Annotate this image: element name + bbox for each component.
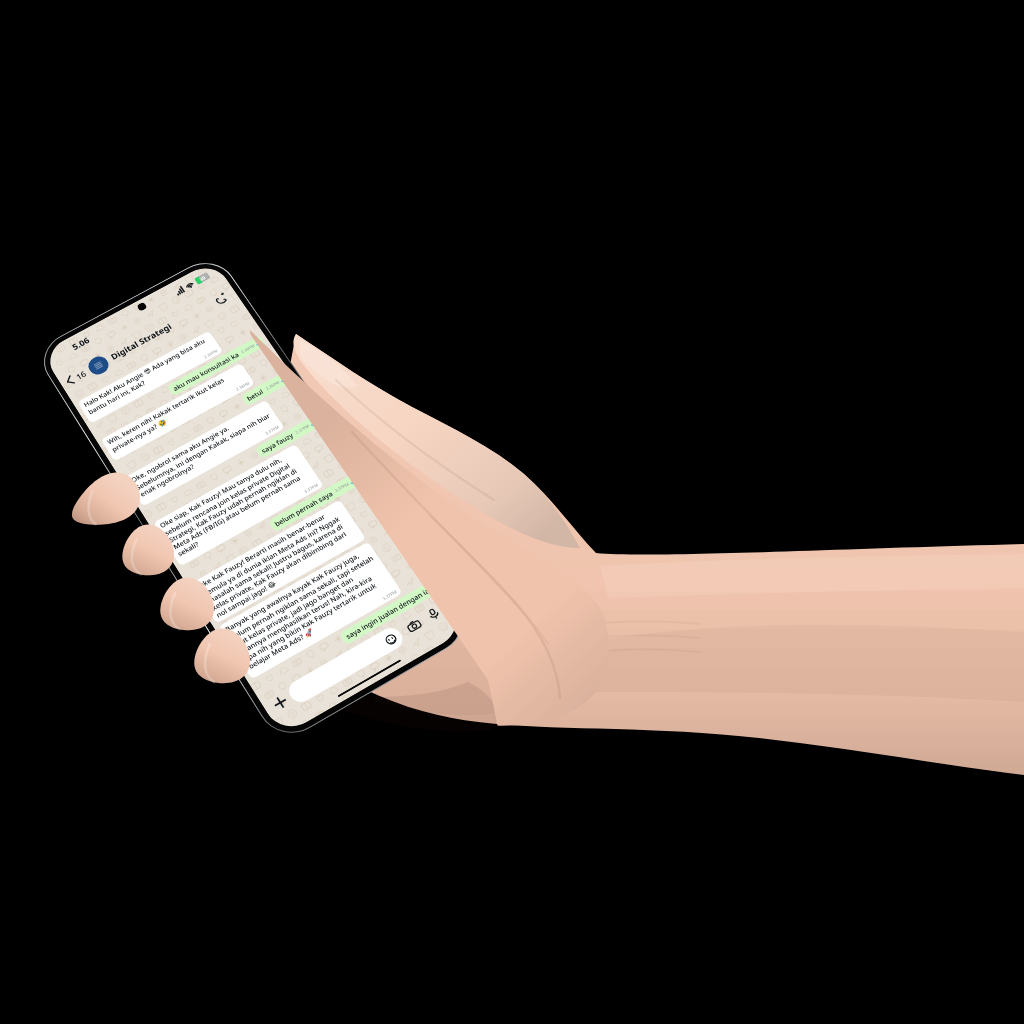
staticText: 2.38PM <box>235 381 251 392</box>
staticText: belum pernah saya <box>273 489 335 528</box>
button[interactable]: saya ingin jualan dengan ia <box>339 582 437 645</box>
button[interactable]: Attach <box>265 689 294 716</box>
staticText: saya fauzy <box>259 431 295 455</box>
staticText: aku mau konsultasi ka <box>171 350 241 393</box>
staticText: 3.37PM <box>303 482 319 494</box>
staticText: 2.36PM <box>265 380 280 391</box>
button[interactable]: Wih, keren nih! Kakak tertarik ikut kela… <box>101 363 255 462</box>
staticText: 30 <box>198 275 207 283</box>
staticText: saya ingin jualan dengan ia <box>344 586 431 641</box>
staticText: Wih, keren nih! Kakak tertarik ikut kela… <box>105 366 248 454</box>
staticText: 2.37PM <box>294 423 310 435</box>
button[interactable]: Add call <box>210 288 233 309</box>
button[interactable]: Voice message <box>420 602 447 626</box>
staticText: Oke Kak Fauzy! Berarti masih benar-benar… <box>196 503 361 620</box>
button[interactable]: Halo Kak! Aku Angie 😎 Ada yang bisa aku … <box>77 331 223 424</box>
staticText: 3.37PM <box>264 424 280 436</box>
staticText: Oke, ngobrol sama aku Angie ya. Sebelumn… <box>129 403 277 499</box>
staticText: 2.36PM <box>240 343 255 354</box>
button[interactable]: belum pernah saya <box>268 473 361 532</box>
staticText: 16 <box>74 368 89 382</box>
staticText: 3.37PM <box>381 589 398 601</box>
staticText: Halo Kak! Aku Angie 😎 Ada yang bisa aku … <box>82 334 216 416</box>
button[interactable]: aku mau konsultasi ka <box>166 335 267 396</box>
staticText: 2.36PM <box>203 348 219 359</box>
button[interactable]: Oke Kak Fauzy! Berarti masih benar-benar… <box>191 500 366 624</box>
staticText: Oke siap, Kak Fauzy! Mau tanya dulu nih,… <box>158 447 316 558</box>
button[interactable]: Digital Strategi <box>109 321 174 362</box>
button[interactable] <box>285 624 407 706</box>
button[interactable]: Oke, ngobrol sama aku Angie ya. Sebelumn… <box>124 400 285 507</box>
button[interactable]: Oke siap, Kak Fauzy! Mau tanya dulu nih,… <box>153 444 324 567</box>
button[interactable]: betul <box>240 371 292 406</box>
button[interactable]: Banyak yang awalnya kayak Kak Fauzy juga… <box>218 541 403 680</box>
staticText: 5.06 <box>70 335 92 353</box>
staticText: 3.37PM <box>334 481 350 493</box>
button[interactable]: Back <box>61 367 89 388</box>
staticText: Banyak yang awalnya kayak Kak Fauzy juga… <box>223 545 395 671</box>
button[interactable]: Camera <box>400 613 427 638</box>
staticText: betul <box>245 387 266 403</box>
button[interactable]: saya fauzy <box>255 415 322 459</box>
